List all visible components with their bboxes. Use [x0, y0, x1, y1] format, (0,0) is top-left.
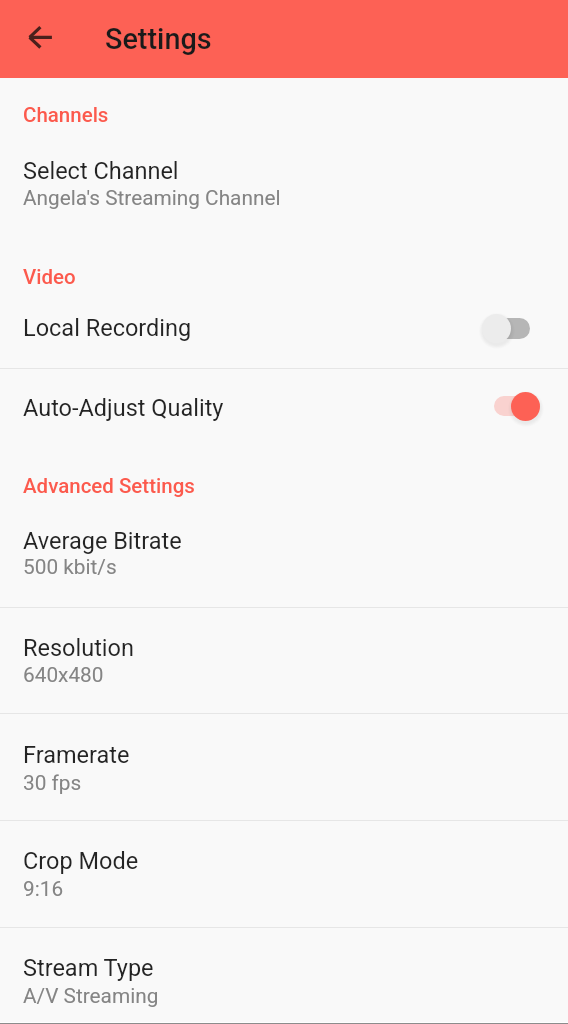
staticText: A/V Streaming	[23, 984, 159, 1008]
staticText: Crop Mode	[23, 847, 139, 875]
staticText: Framerate	[23, 741, 130, 769]
staticText: Advanced Settings	[23, 474, 195, 498]
staticText: Resolution	[23, 634, 134, 662]
button[interactable]: Auto-Adjust Quality	[0, 369, 568, 442]
staticText: Channels	[23, 103, 109, 127]
staticText: Stream Type	[23, 954, 154, 982]
staticText: Average Bitrate	[23, 527, 182, 555]
staticText: Settings	[105, 22, 212, 56]
button[interactable]: Local Recording, off	[482, 314, 540, 348]
button[interactable]: Auto-Adjust Quality, on	[494, 392, 552, 426]
staticText: Auto-Adjust Quality	[23, 394, 224, 422]
button[interactable]: Local Recording	[0, 295, 568, 368]
staticText: Local Recording	[23, 314, 192, 342]
button[interactable]: Resolution	[0, 608, 568, 713]
button[interactable]: Stream Type	[0, 928, 568, 1022]
button[interactable]: Average Bitrate	[0, 505, 568, 607]
staticText: 9:16	[23, 877, 64, 901]
staticText: Angela's Streaming Channel	[23, 186, 281, 210]
staticText: 500 kbit/s	[23, 555, 117, 579]
staticText: Select Channel	[23, 157, 179, 185]
staticText: 640x480	[23, 663, 104, 687]
button[interactable]: Select Channel	[0, 134, 568, 230]
button[interactable]: Crop Mode	[0, 821, 568, 927]
button[interactable]: Framerate	[0, 714, 568, 820]
button[interactable]: Back	[12, 9, 68, 65]
staticText: Video	[23, 265, 76, 289]
staticText: 30 fps	[23, 771, 82, 795]
